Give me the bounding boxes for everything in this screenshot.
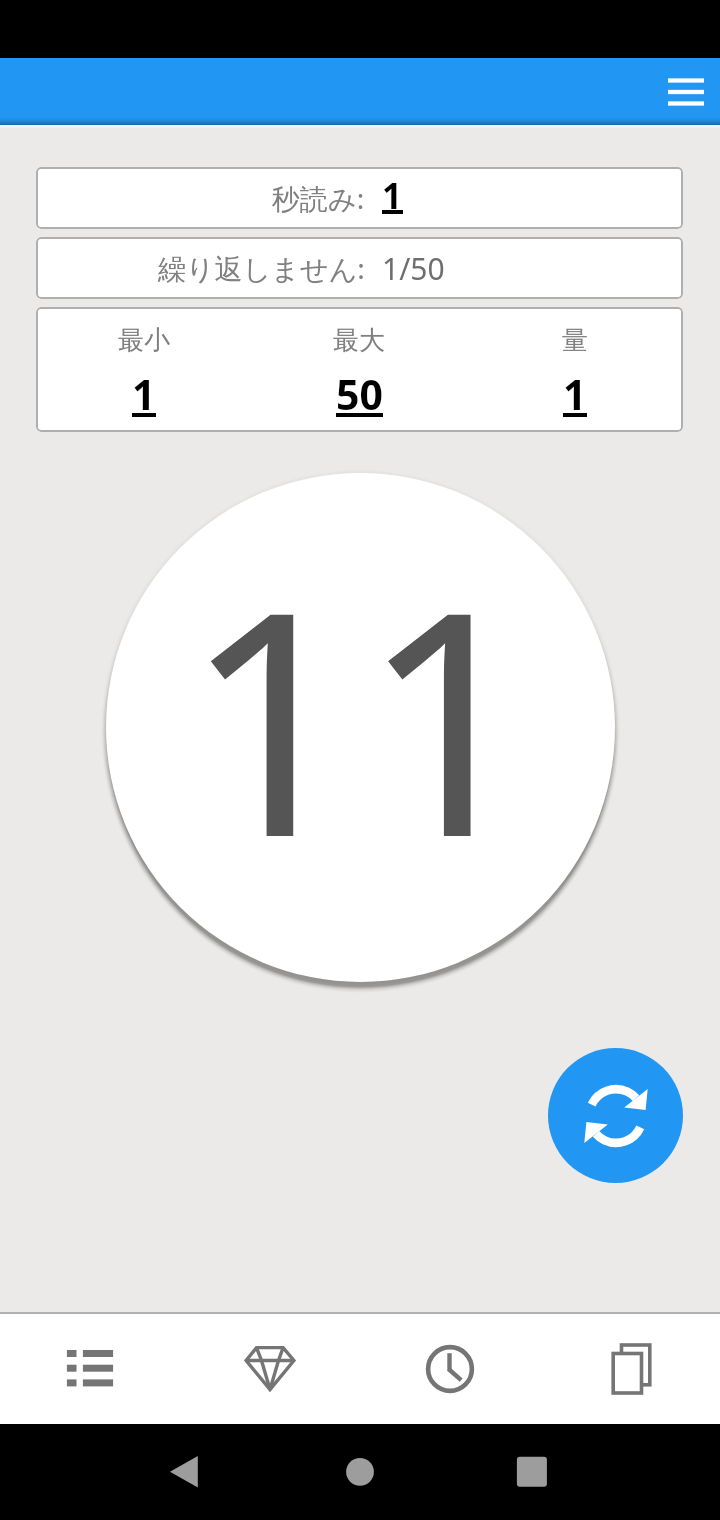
- button[interactable]: History: [360, 1314, 540, 1424]
- button[interactable]: 秒読み:: [36, 167, 683, 229]
- button[interactable]: Menu: [656, 62, 716, 122]
- button[interactable]: Refresh: [548, 1048, 683, 1183]
- staticText: 50: [336, 366, 383, 422]
- staticText: 繰り返しません:: [158, 249, 365, 287]
- button[interactable]: Favorites: [180, 1314, 360, 1424]
- button[interactable]: 最小: [36, 307, 683, 432]
- staticText: 1: [382, 172, 403, 220]
- staticText: 量: [562, 324, 588, 357]
- button[interactable]: 11: [106, 473, 615, 982]
- staticText: 1: [563, 366, 587, 422]
- staticText: 最大: [333, 324, 385, 357]
- button[interactable]: 量: [467, 307, 683, 432]
- staticText: 最小: [118, 324, 170, 357]
- button[interactable]: 繰り返しません:: [36, 237, 683, 299]
- staticText: 1/50: [382, 248, 445, 289]
- button[interactable]: Copy: [540, 1314, 720, 1424]
- staticText: 秒読み:: [272, 179, 365, 217]
- button[interactable]: 最大: [251, 307, 467, 432]
- staticText: 11: [183, 505, 538, 927]
- staticText: 1: [132, 366, 156, 422]
- button[interactable]: List: [0, 1314, 180, 1424]
- button[interactable]: 最小: [36, 307, 251, 432]
